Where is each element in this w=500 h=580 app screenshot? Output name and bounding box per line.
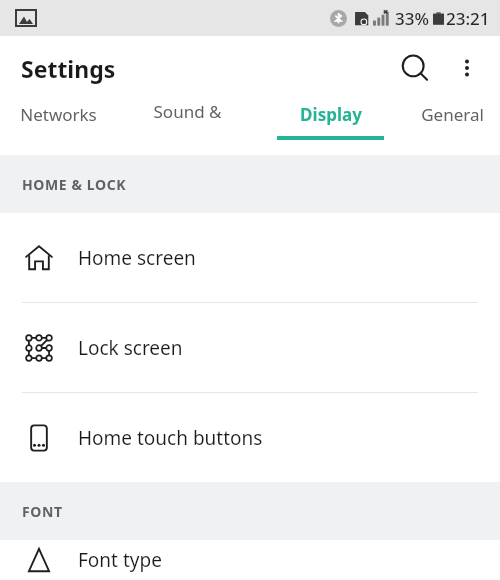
button[interactable]: Home screen	[0, 213, 500, 303]
button[interactable]: Networks	[14, 100, 103, 136]
button[interactable]: Font type	[0, 540, 500, 580]
staticText: Home touch buttons	[78, 425, 263, 451]
staticText: Lock screen	[78, 335, 183, 361]
button[interactable]: General	[415, 100, 490, 136]
staticText: General	[421, 103, 484, 126]
button[interactable]: More options	[447, 48, 487, 88]
staticText: FONT	[22, 502, 63, 521]
staticText: HOME & LOCK	[22, 175, 127, 194]
staticText: Home screen	[78, 245, 196, 271]
staticText: Font type	[78, 547, 162, 573]
staticText: 33%	[395, 7, 429, 30]
staticText: Settings	[21, 53, 116, 84]
staticText: Display	[300, 103, 362, 126]
staticText: 23:21	[446, 7, 490, 30]
button[interactable]: Lock screen	[0, 303, 500, 393]
button[interactable]: Home touch buttons	[0, 393, 500, 482]
button[interactable]: Sound & notification	[128, 100, 247, 136]
button[interactable]: Display	[271, 100, 390, 140]
staticText: Sound & notification	[134, 100, 241, 129]
staticText: Networks	[20, 103, 97, 126]
button[interactable]: Search	[392, 45, 438, 91]
